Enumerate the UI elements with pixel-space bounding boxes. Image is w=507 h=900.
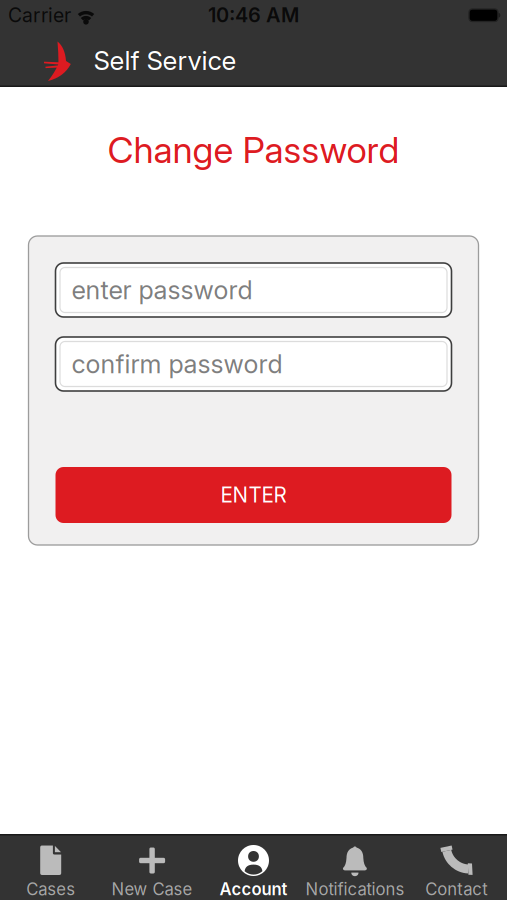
staticText: Notifications <box>305 879 404 899</box>
button[interactable]: enter password <box>55 263 451 317</box>
button[interactable]: ENTER <box>55 467 451 523</box>
staticText: Contact <box>425 879 487 899</box>
staticText: Change Password <box>107 128 399 172</box>
staticText: Cases <box>26 879 75 899</box>
button[interactable]: Notifications <box>304 835 406 900</box>
staticText: Carrier <box>8 4 71 27</box>
staticText: ENTER <box>220 482 286 507</box>
staticText: Account <box>219 879 287 899</box>
staticText: New Case <box>112 879 193 899</box>
staticText: enter password <box>71 275 252 305</box>
button[interactable]: New Case <box>101 835 203 900</box>
button[interactable]: confirm password <box>55 337 451 391</box>
staticText: confirm password <box>71 349 282 379</box>
staticText: Self Service <box>93 45 236 76</box>
button[interactable]: Cases <box>0 835 101 900</box>
button[interactable]: Account <box>203 835 304 900</box>
button[interactable]: Contact <box>406 835 507 900</box>
staticText: 10:46 AM <box>208 3 299 27</box>
